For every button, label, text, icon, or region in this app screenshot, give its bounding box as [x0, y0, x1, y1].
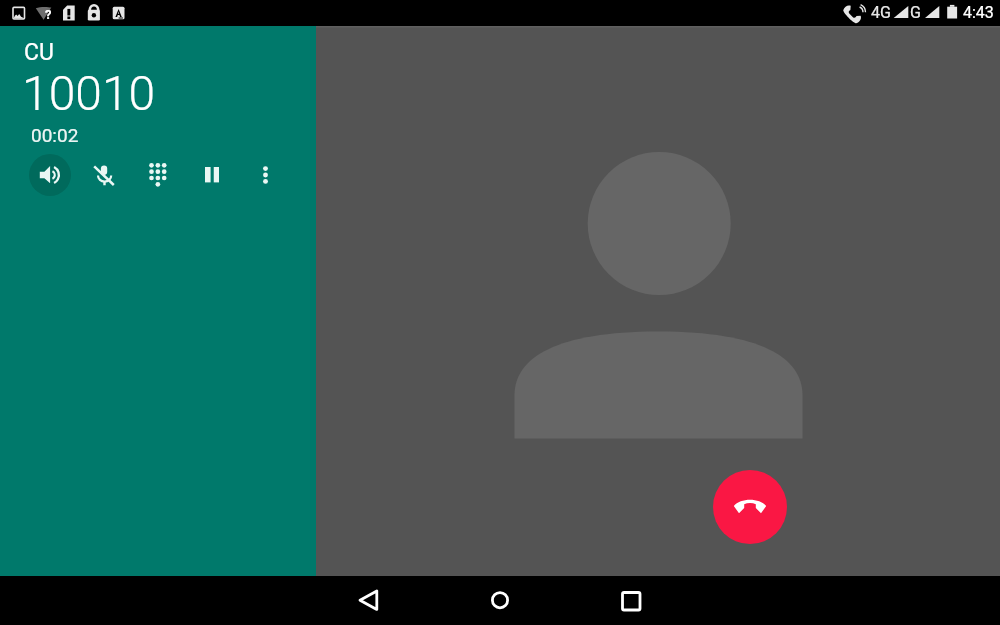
button[interactable]: Back [345, 576, 393, 625]
staticText: 4:43 [963, 3, 994, 22]
button[interactable]: Hold [190, 154, 232, 196]
button[interactable]: Home [476, 576, 524, 625]
staticText: 4G [871, 3, 891, 22]
button[interactable]: Dialpad [136, 154, 178, 196]
staticText: CU [24, 39, 54, 66]
button[interactable]: More options [244, 154, 286, 196]
staticText: G [910, 3, 921, 22]
staticText: 10010 [22, 65, 156, 121]
button[interactable]: Recent apps [607, 576, 655, 625]
button[interactable]: Speaker [29, 154, 71, 196]
staticText: 00:02 [31, 124, 79, 146]
staticText: ? [45, 7, 52, 22]
button[interactable]: Mute [83, 154, 125, 196]
button[interactable]: End call [713, 470, 787, 544]
